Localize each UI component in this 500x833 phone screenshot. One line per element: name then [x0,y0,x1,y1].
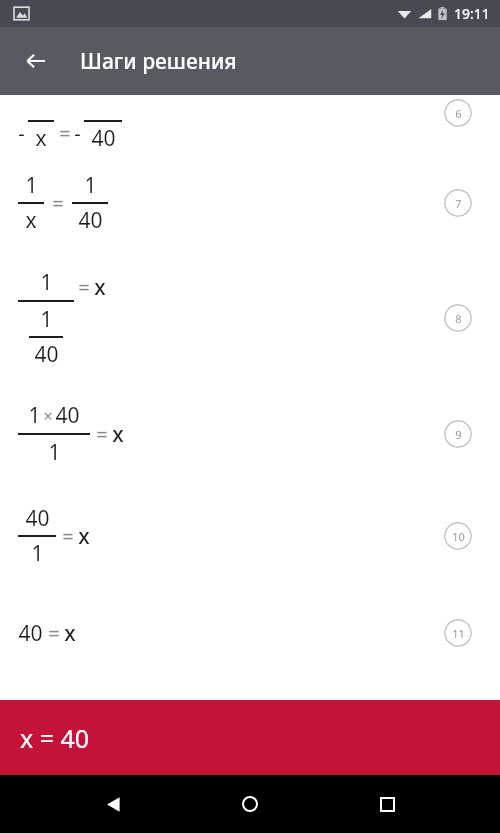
staticText: 1 [48,438,61,467]
staticText: - [18,120,25,147]
staticText: x [94,273,106,302]
staticText: x = 40 [20,721,90,755]
staticText: 40 [91,124,116,153]
button[interactable]: Back [89,780,137,828]
button[interactable]: 1 [0,253,500,383]
staticText: = [96,421,108,448]
button[interactable]: 40 [0,485,500,587]
staticText: 1 [25,171,38,200]
staticText: 11 [452,626,465,641]
staticText: = [62,523,74,550]
staticText: 1 [31,539,44,568]
staticText: 40 [25,504,50,533]
button[interactable]: Step 10 [444,522,472,550]
button[interactable]: x = 40 [0,700,500,775]
staticText: 40 [34,340,59,369]
staticText: 40 [18,619,43,648]
staticText: × [43,405,53,427]
button[interactable]: Recent apps [363,780,411,828]
staticText: 1 [84,171,97,200]
staticText: 7 [455,196,462,211]
button[interactable]: 1 [0,153,500,253]
staticText: 19:11 [454,4,490,23]
button[interactable]: 40 [0,587,500,679]
staticText: 1 [40,305,53,334]
staticText: 6 [455,106,462,121]
staticText: x [112,420,124,449]
button[interactable]: Home [226,780,274,828]
button[interactable]: Step 8 [444,304,472,332]
button[interactable]: Step 9 [444,420,472,448]
button[interactable]: Step 11 [444,619,472,647]
staticText: 1 [28,401,41,430]
staticText: = [52,190,64,217]
staticText: = [59,120,71,147]
staticText: 40 [78,206,103,235]
button[interactable]: Back [14,39,58,83]
button[interactable]: Step 7 [444,189,472,217]
button[interactable]: 1 [0,383,500,485]
button[interactable]: - [0,95,500,153]
staticText: 1 [40,268,53,297]
staticText: x [78,522,90,551]
staticText: - [74,120,81,147]
staticText: 10 [452,529,465,544]
staticText: 9 [455,427,462,442]
staticText: = [48,620,60,647]
staticText: x [64,619,76,648]
staticText: x [35,124,47,153]
staticText: 8 [455,311,462,326]
button[interactable]: Step 6 [444,99,472,127]
staticText: 40 [55,401,80,430]
staticText: = [78,274,90,301]
staticText: x [25,206,37,235]
staticText: Шаги решения [80,47,237,76]
